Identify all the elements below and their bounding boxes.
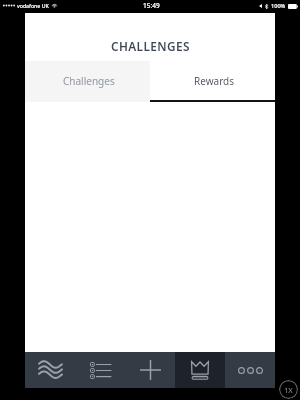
staticText: CHALLENGES [111, 38, 190, 54]
button[interactable]: Rewards [150, 61, 275, 102]
staticText: 1X [284, 385, 293, 395]
button[interactable]: Add [125, 352, 175, 388]
button[interactable]: Waves [25, 352, 75, 388]
staticText: 15:49 [143, 1, 160, 10]
staticText: Challenges [63, 74, 115, 88]
button[interactable]: List [75, 352, 125, 388]
staticText: Rewards [194, 74, 234, 88]
staticText: vodafone UK [17, 2, 49, 9]
staticText: 100% [271, 2, 286, 10]
button[interactable]: Rewards [175, 352, 225, 388]
button[interactable]: Challenges [25, 61, 150, 102]
button[interactable]: More [225, 352, 275, 388]
